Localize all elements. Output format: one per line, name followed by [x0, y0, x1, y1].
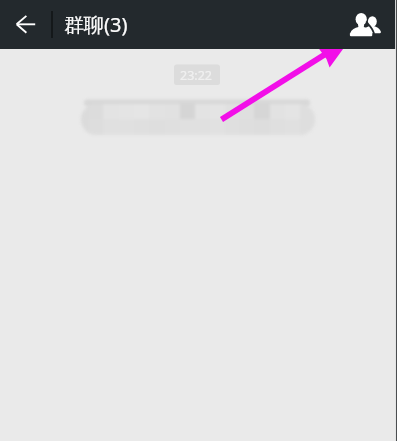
staticText: 群聊(3) — [64, 11, 128, 38]
staticText: 23:22 — [180, 67, 212, 84]
button[interactable]: Back — [4, 1, 52, 49]
button[interactable]: Group members — [340, 0, 389, 49]
